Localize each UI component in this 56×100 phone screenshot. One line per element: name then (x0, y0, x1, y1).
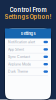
staticText: Sync Contact (8, 55, 30, 59)
button[interactable]: Sync Contact (5, 53, 51, 61)
button[interactable]: Airplane Mode (5, 61, 51, 68)
button[interactable]: Notification alert (5, 38, 51, 46)
staticText: Notification alert (8, 40, 35, 44)
staticText: Settings (20, 31, 35, 36)
button[interactable]: App Silent (5, 46, 51, 53)
button[interactable]: Dark Theme (5, 68, 51, 75)
staticText: App Silent (8, 47, 24, 51)
staticText: Settings Option! (4, 13, 51, 20)
staticText: Airplane Mode (8, 62, 31, 66)
staticText: Dark Theme (8, 69, 28, 74)
staticText: Control From (9, 6, 46, 13)
